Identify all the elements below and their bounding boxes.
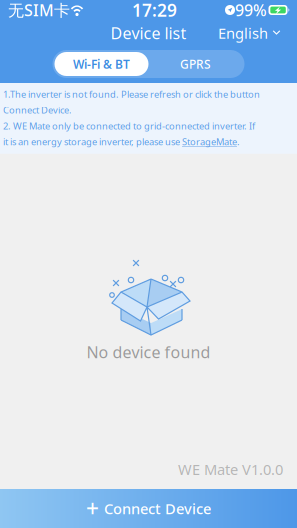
staticText: 99%	[235, 0, 267, 21]
button[interactable]: Wi-Fi & BT	[54, 52, 148, 76]
staticText: Connect Device.	[3, 104, 72, 116]
staticText: GPRS	[180, 56, 211, 72]
staticText: .	[237, 135, 240, 148]
staticText: WE Mate V1.0.0	[178, 459, 283, 479]
staticText: 无SIM卡	[8, 0, 70, 21]
staticText: Wi-Fi & BT	[73, 56, 130, 72]
staticText: No device found	[86, 341, 210, 363]
button[interactable]: +	[0, 489, 297, 528]
staticText: English	[218, 23, 268, 43]
staticText: it is an energy storage inverter, please…	[3, 135, 182, 148]
button[interactable]: GPRS	[148, 52, 242, 76]
staticText: StorageMate	[182, 135, 237, 148]
staticText: Connect Device	[104, 499, 211, 518]
staticText: 2. WE Mate only be connected to grid-con…	[3, 120, 255, 132]
button[interactable]: English	[218, 18, 281, 48]
staticText: +	[86, 493, 99, 523]
staticText: Device list	[110, 22, 186, 44]
staticText: 17:29	[132, 0, 177, 21]
staticText: 1.The inverter is not found. Please refr…	[3, 88, 260, 100]
